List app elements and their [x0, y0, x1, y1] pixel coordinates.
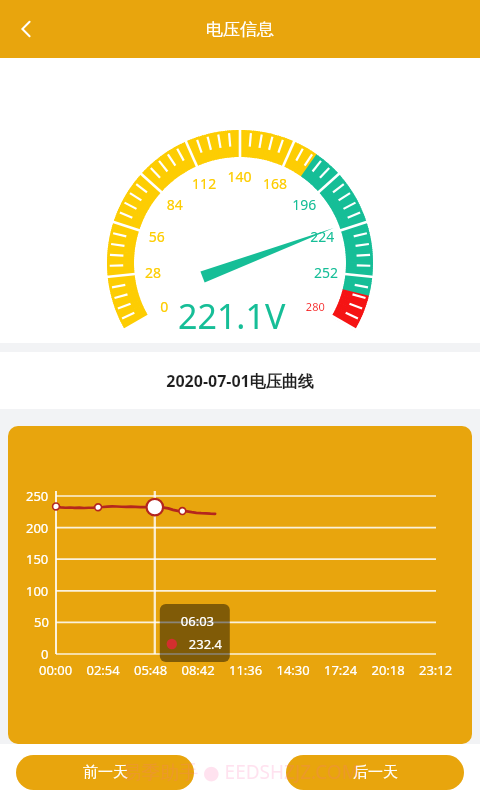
- staticText: 2020-07-01电压曲线: [166, 370, 314, 392]
- staticText: 电压信息: [206, 19, 274, 40]
- staticText: 后一天: [353, 763, 398, 782]
- button[interactable]: 后一天: [286, 755, 464, 790]
- button[interactable]: 前一天: [16, 755, 194, 790]
- button[interactable]: Back: [2, 5, 50, 53]
- staticText: 易季助手 ● EEDSHZJZ.COM: [122, 759, 359, 785]
- staticText: 前一天: [83, 763, 128, 782]
- button[interactable]: [8, 426, 472, 744]
